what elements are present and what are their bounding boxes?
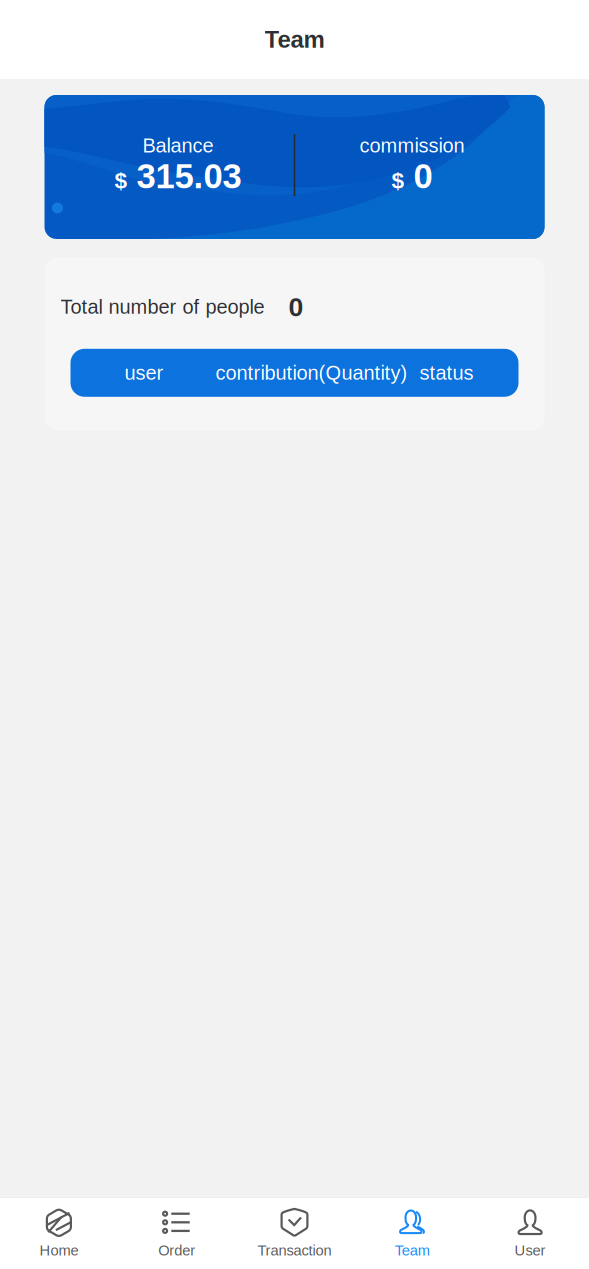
button[interactable]: User — [471, 1198, 589, 1269]
staticText: status — [419, 362, 473, 384]
button[interactable]: Team — [353, 1198, 471, 1269]
staticText: 0 — [413, 157, 432, 195]
staticText: 315.03 — [137, 157, 242, 195]
button[interactable]: Transaction — [236, 1198, 353, 1269]
staticText: Total number of people — [60, 296, 264, 318]
staticText: user — [124, 362, 163, 384]
button[interactable]: user — [70, 349, 518, 397]
staticText: User — [515, 1242, 546, 1259]
button[interactable]: Home — [0, 1198, 118, 1269]
staticText: commission — [359, 134, 464, 157]
staticText: 0 — [288, 292, 303, 322]
staticText: Transaction — [257, 1242, 331, 1259]
staticText: $ — [391, 168, 404, 193]
staticText: contribution(Quantity) — [215, 362, 407, 384]
staticText: Balance — [143, 134, 214, 157]
staticText: Order — [158, 1242, 195, 1259]
staticText: Home — [39, 1242, 78, 1259]
staticText: Team — [264, 26, 324, 53]
button[interactable]: Order — [118, 1198, 236, 1269]
staticText: Team — [395, 1242, 430, 1259]
staticText: $ — [115, 168, 128, 193]
